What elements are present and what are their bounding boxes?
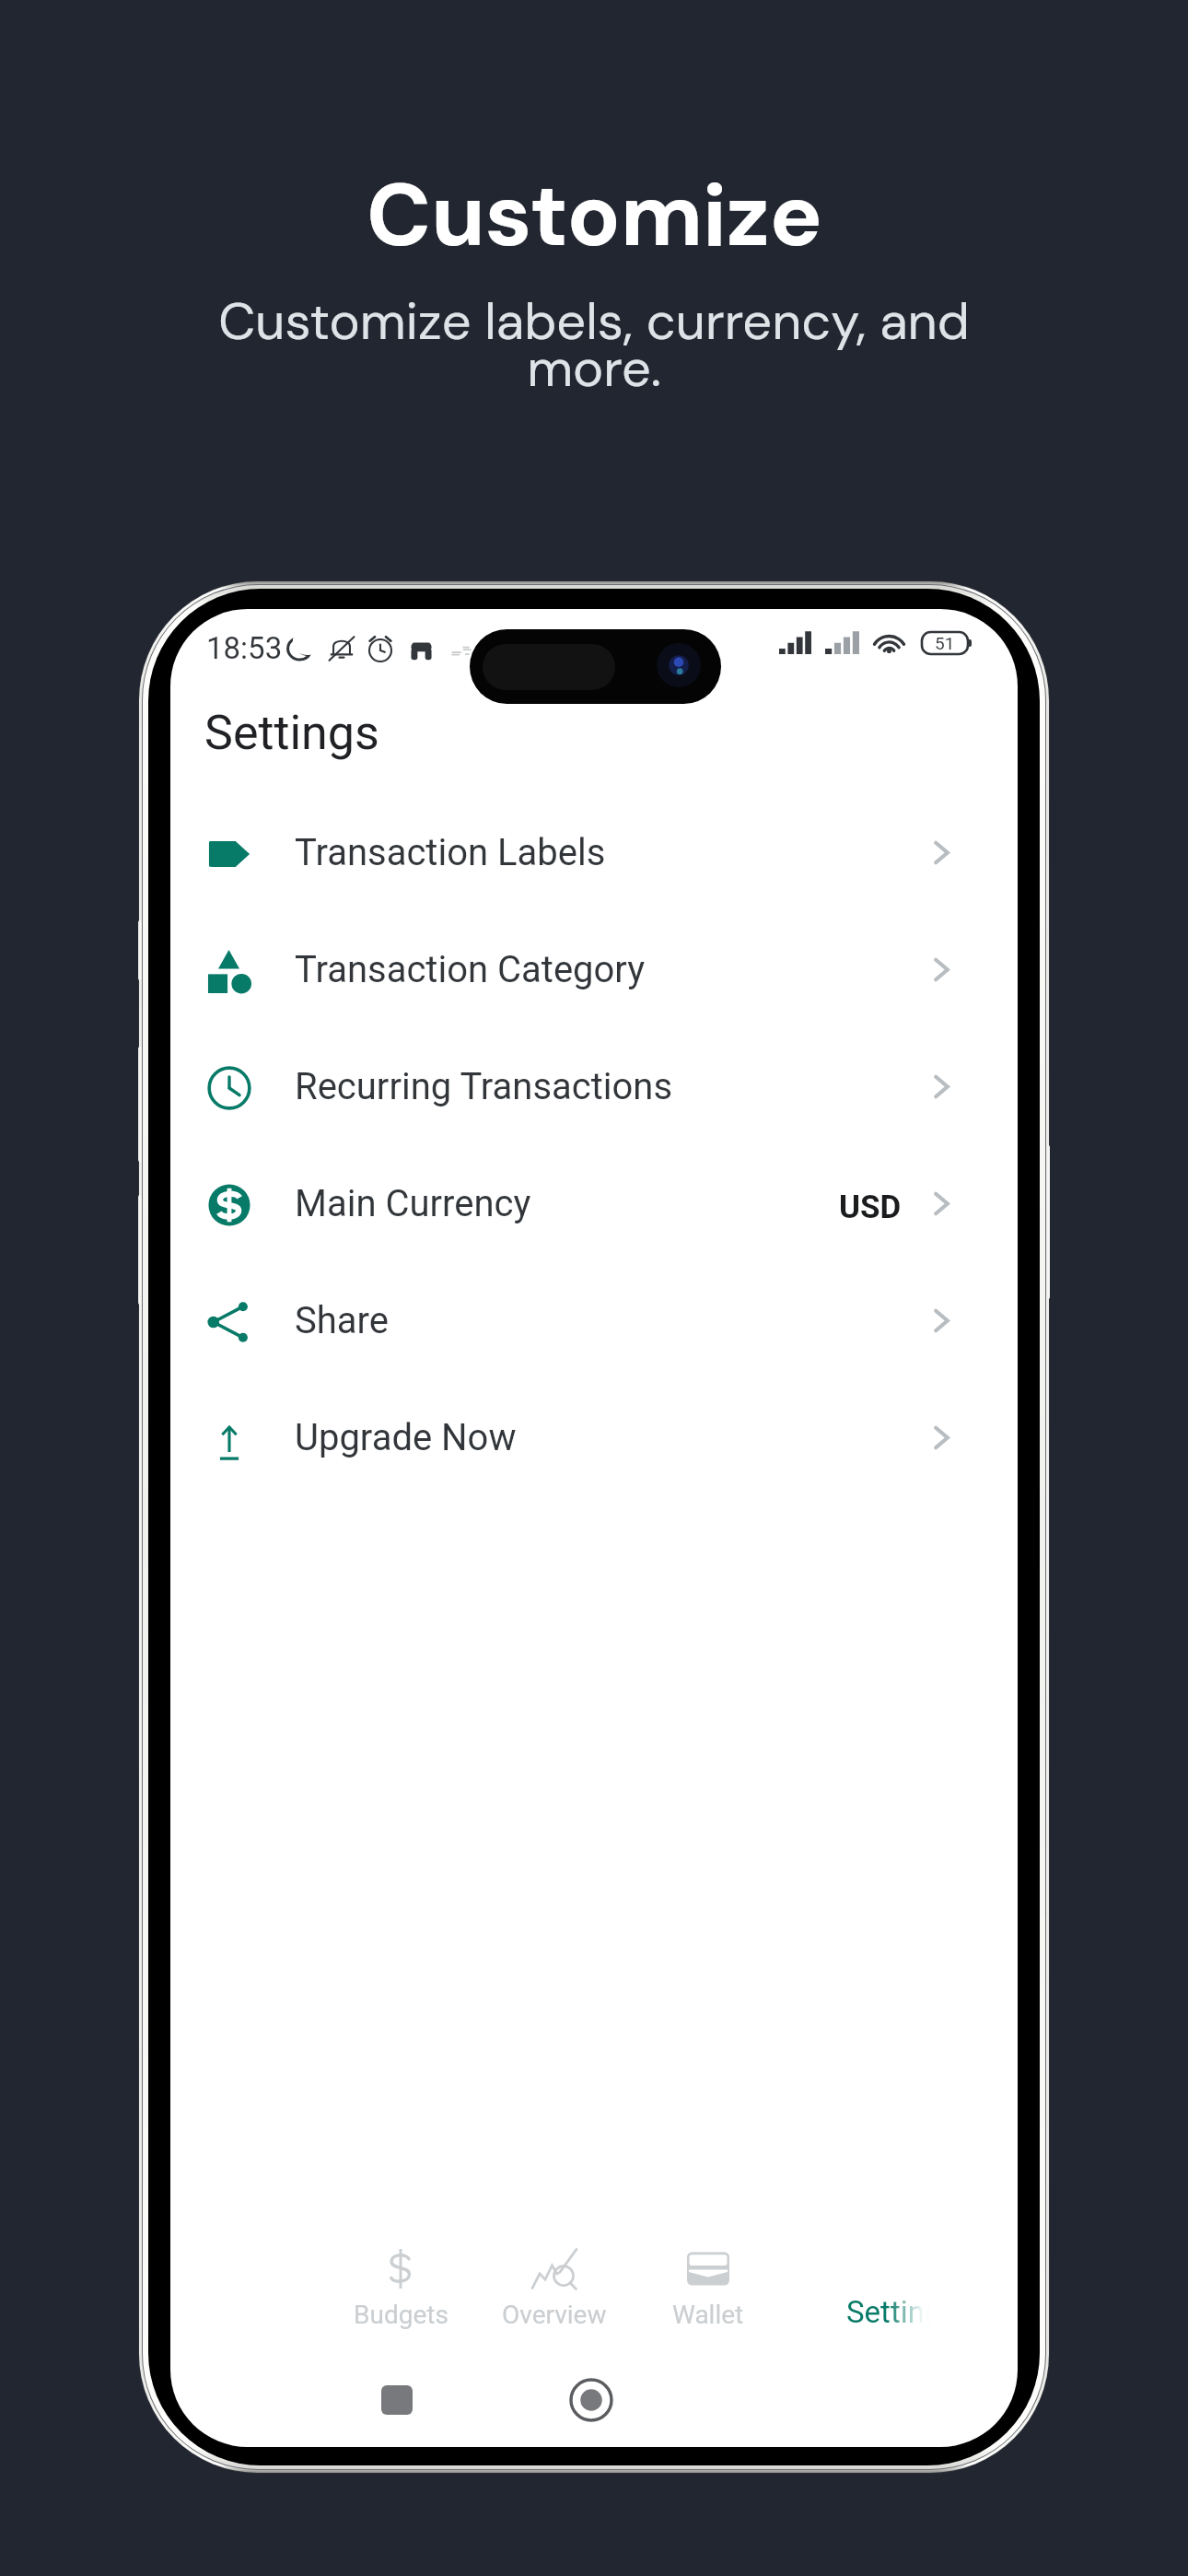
button[interactable]: Transaction Labels <box>170 795 1018 912</box>
staticText: Transaction Labels <box>295 831 606 874</box>
staticText: Main Currency <box>295 1182 531 1225</box>
staticText: Budgets <box>354 2300 448 2330</box>
other: Recent apps <box>381 2385 413 2415</box>
button[interactable]: Budgets <box>323 2254 478 2364</box>
staticText: Upgrade Now <box>295 1416 517 1459</box>
button[interactable]: Settings <box>845 2254 1000 2364</box>
staticText: Customize <box>367 158 822 273</box>
button[interactable]: Main Currency <box>170 1146 1018 1263</box>
staticText: Overview <box>502 2300 607 2330</box>
staticText: Settings <box>846 2294 958 2330</box>
button[interactable]: Transaction Category <box>170 912 1018 1029</box>
staticText: 51 <box>935 633 955 653</box>
staticText: Wallet <box>672 2300 744 2330</box>
staticText: Transaction Category <box>295 948 646 991</box>
staticText: Settings <box>204 705 379 761</box>
staticText: 18:53 <box>206 630 283 666</box>
button[interactable]: Recurring Transactions <box>170 1029 1018 1146</box>
button[interactable]: Overview <box>477 2254 632 2364</box>
staticText: Share <box>295 1299 389 1342</box>
other: Home <box>569 2378 613 2422</box>
button[interactable]: Upgrade Now <box>170 1380 1018 1497</box>
button[interactable]: Wallet <box>631 2254 786 2364</box>
staticText: USD <box>839 1188 902 1226</box>
staticText: Customize labels, currency, and more. <box>207 287 981 402</box>
button[interactable]: Share <box>170 1263 1018 1380</box>
staticText: Recurring Transactions <box>295 1065 673 1108</box>
